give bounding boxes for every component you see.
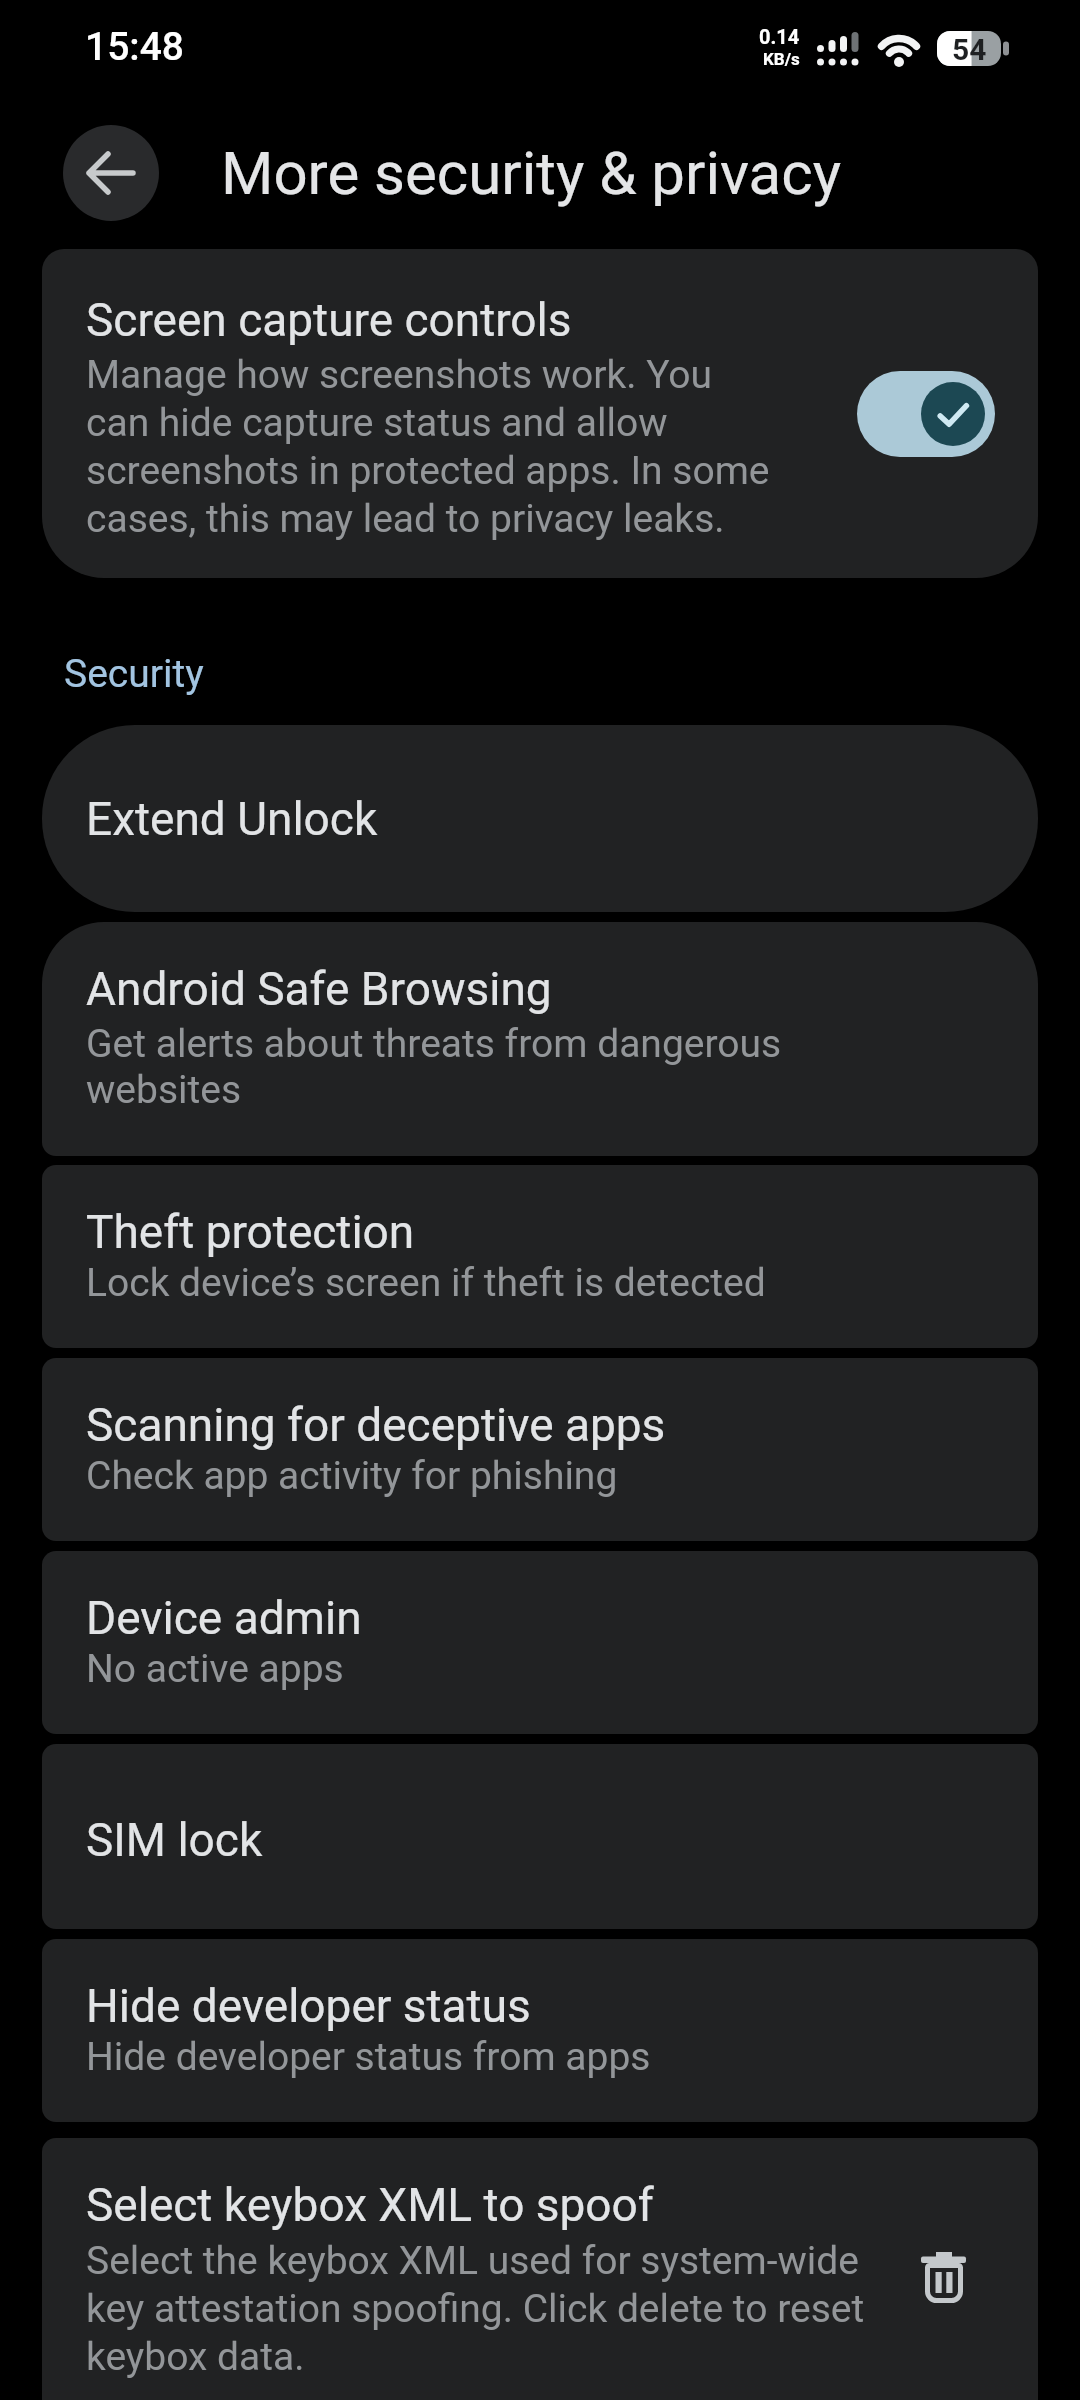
staticText: Check app activity for phishing [86, 1453, 618, 1499]
button[interactable]: SIM lock [42, 1744, 1038, 1929]
button[interactable] [63, 125, 159, 221]
staticText: Screen capture controls [86, 292, 572, 347]
staticText: Theft protection [86, 1204, 415, 1259]
button[interactable]: Scanning for deceptive apps [42, 1358, 1038, 1541]
button[interactable]: Screen capture controls [42, 249, 1038, 578]
staticText: Hide developer status [86, 1978, 531, 2033]
button[interactable]: Android Safe Browsing [42, 922, 1038, 1156]
button[interactable]: Extend Unlock [42, 725, 1038, 912]
staticText: Select keybox XML to spoof [86, 2177, 654, 2232]
button[interactable]: Device admin [42, 1551, 1038, 1734]
staticText: Get alerts about threats from dangerous … [86, 1021, 782, 1113]
button[interactable]: Select keybox XML to spoof [42, 2138, 1038, 2400]
button[interactable] [857, 371, 995, 457]
staticText: 15:48 [85, 24, 185, 70]
staticText: Lock device’s screen if theft is detecte… [86, 1260, 766, 1306]
staticText: No active apps [86, 1646, 344, 1692]
staticText: Hide developer status from apps [86, 2034, 651, 2080]
button[interactable]: Theft protection [42, 1165, 1038, 1348]
staticText: 54 [952, 31, 987, 66]
staticText: More security & privacy [221, 137, 842, 209]
staticText: Device admin [86, 1590, 362, 1645]
button[interactable]: Hide developer status [42, 1939, 1038, 2122]
staticText: Security [64, 651, 204, 697]
staticText: Select the keybox XML used for system-wi… [86, 2236, 865, 2380]
staticText: Extend Unlock [86, 791, 378, 846]
staticText: Manage how screenshots work. You can hid… [86, 350, 770, 542]
staticText: Android Safe Browsing [86, 961, 552, 1016]
staticText: 0.14 [759, 25, 800, 49]
staticText: KB/s [763, 49, 800, 69]
staticText: Scanning for deceptive apps [86, 1397, 666, 1452]
staticText: SIM lock [86, 1812, 263, 1867]
